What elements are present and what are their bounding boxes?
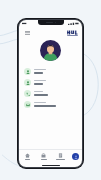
button[interactable]: STORE bbox=[35, 149, 52, 163]
button[interactable]: Menu bbox=[23, 29, 31, 37]
button[interactable] bbox=[19, 99, 82, 110]
button[interactable]: Account bbox=[72, 153, 79, 160]
button[interactable]: Brand logo bbox=[67, 29, 78, 36]
button[interactable] bbox=[19, 88, 82, 99]
button[interactable] bbox=[19, 66, 82, 77]
button[interactable]: HOME bbox=[19, 149, 35, 163]
button[interactable]: Profile photo bbox=[40, 40, 61, 61]
button[interactable]: MY ORDERS bbox=[52, 149, 69, 163]
button[interactable] bbox=[19, 77, 82, 88]
